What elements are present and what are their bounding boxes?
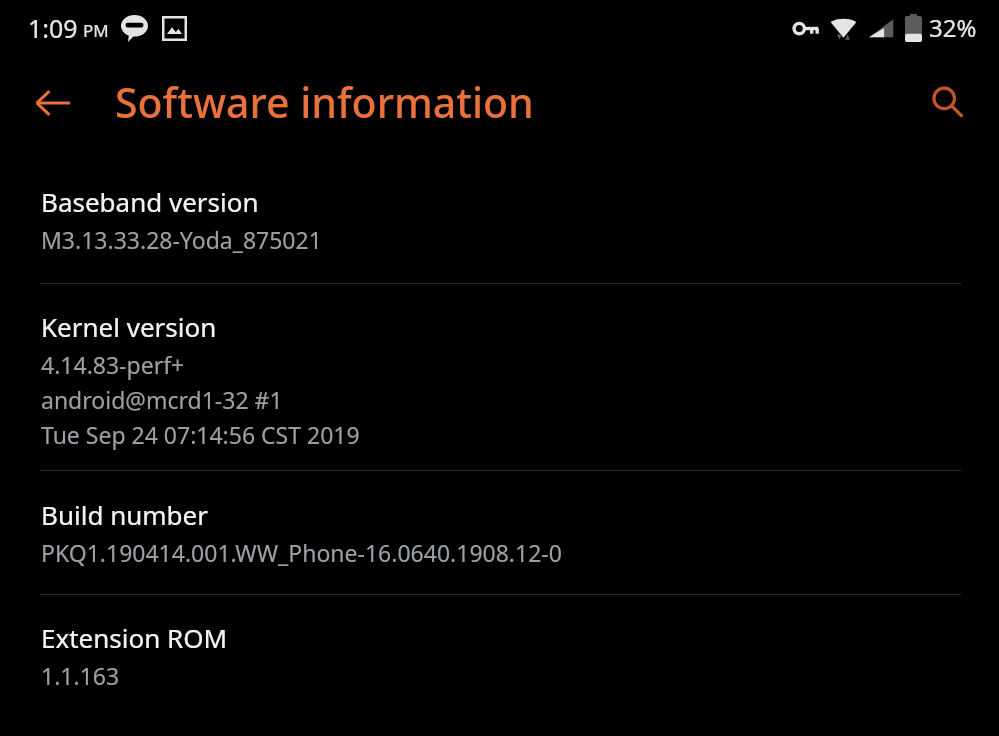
staticText: android@mcrd1-32 #1 xyxy=(41,384,283,415)
button[interactable]: Extension ROM xyxy=(0,620,999,691)
staticText: Software information xyxy=(115,74,534,130)
staticText: Build number xyxy=(41,497,208,532)
button[interactable]: Back xyxy=(26,76,80,130)
staticText: PM xyxy=(83,19,109,42)
staticText: Extension ROM xyxy=(41,620,228,655)
staticText: 32% xyxy=(929,11,977,44)
staticText: Baseband version xyxy=(41,184,259,219)
staticText: 1.1.163 xyxy=(41,660,120,691)
staticText: PKQ1.190414.001.WW_Phone-16.0640.1908.12… xyxy=(41,537,562,568)
button[interactable]: Build number xyxy=(0,497,999,568)
staticText: Tue Sep 24 07:14:56 CST 2019 xyxy=(41,419,360,450)
staticText: M3.13.33.28-Yoda_875021 xyxy=(41,224,322,255)
button[interactable]: Kernel version xyxy=(0,309,999,450)
button[interactable]: Baseband version xyxy=(0,184,999,255)
staticText: 1:09 xyxy=(28,11,78,45)
button[interactable]: Search xyxy=(921,76,975,130)
staticText: 4.14.83-perf+ xyxy=(41,349,185,380)
staticText: Kernel version xyxy=(41,309,217,344)
